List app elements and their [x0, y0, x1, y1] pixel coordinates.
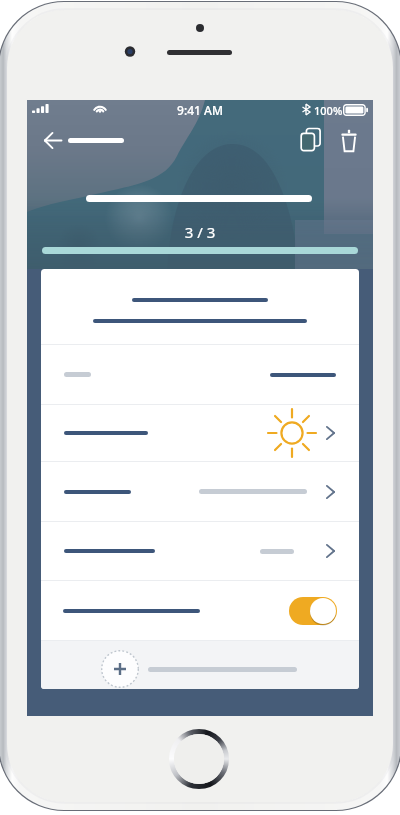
- button[interactable]: Toggle setting: [41, 581, 359, 640]
- button[interactable]: [41, 641, 359, 689]
- staticText: 3 / 3: [27, 222, 373, 242]
- button[interactable]: Toggle setting: [289, 597, 337, 625]
- button[interactable]: Back: [38, 126, 67, 155]
- button[interactable]: [41, 462, 359, 521]
- button[interactable]: [41, 522, 359, 580]
- button[interactable]: [41, 405, 359, 461]
- staticText: 9:41 AM: [27, 102, 373, 118]
- button[interactable]: Delete: [337, 127, 361, 155]
- button[interactable]: [41, 345, 359, 404]
- button[interactable]: Copy: [298, 127, 324, 155]
- staticText: 100%: [314, 103, 343, 118]
